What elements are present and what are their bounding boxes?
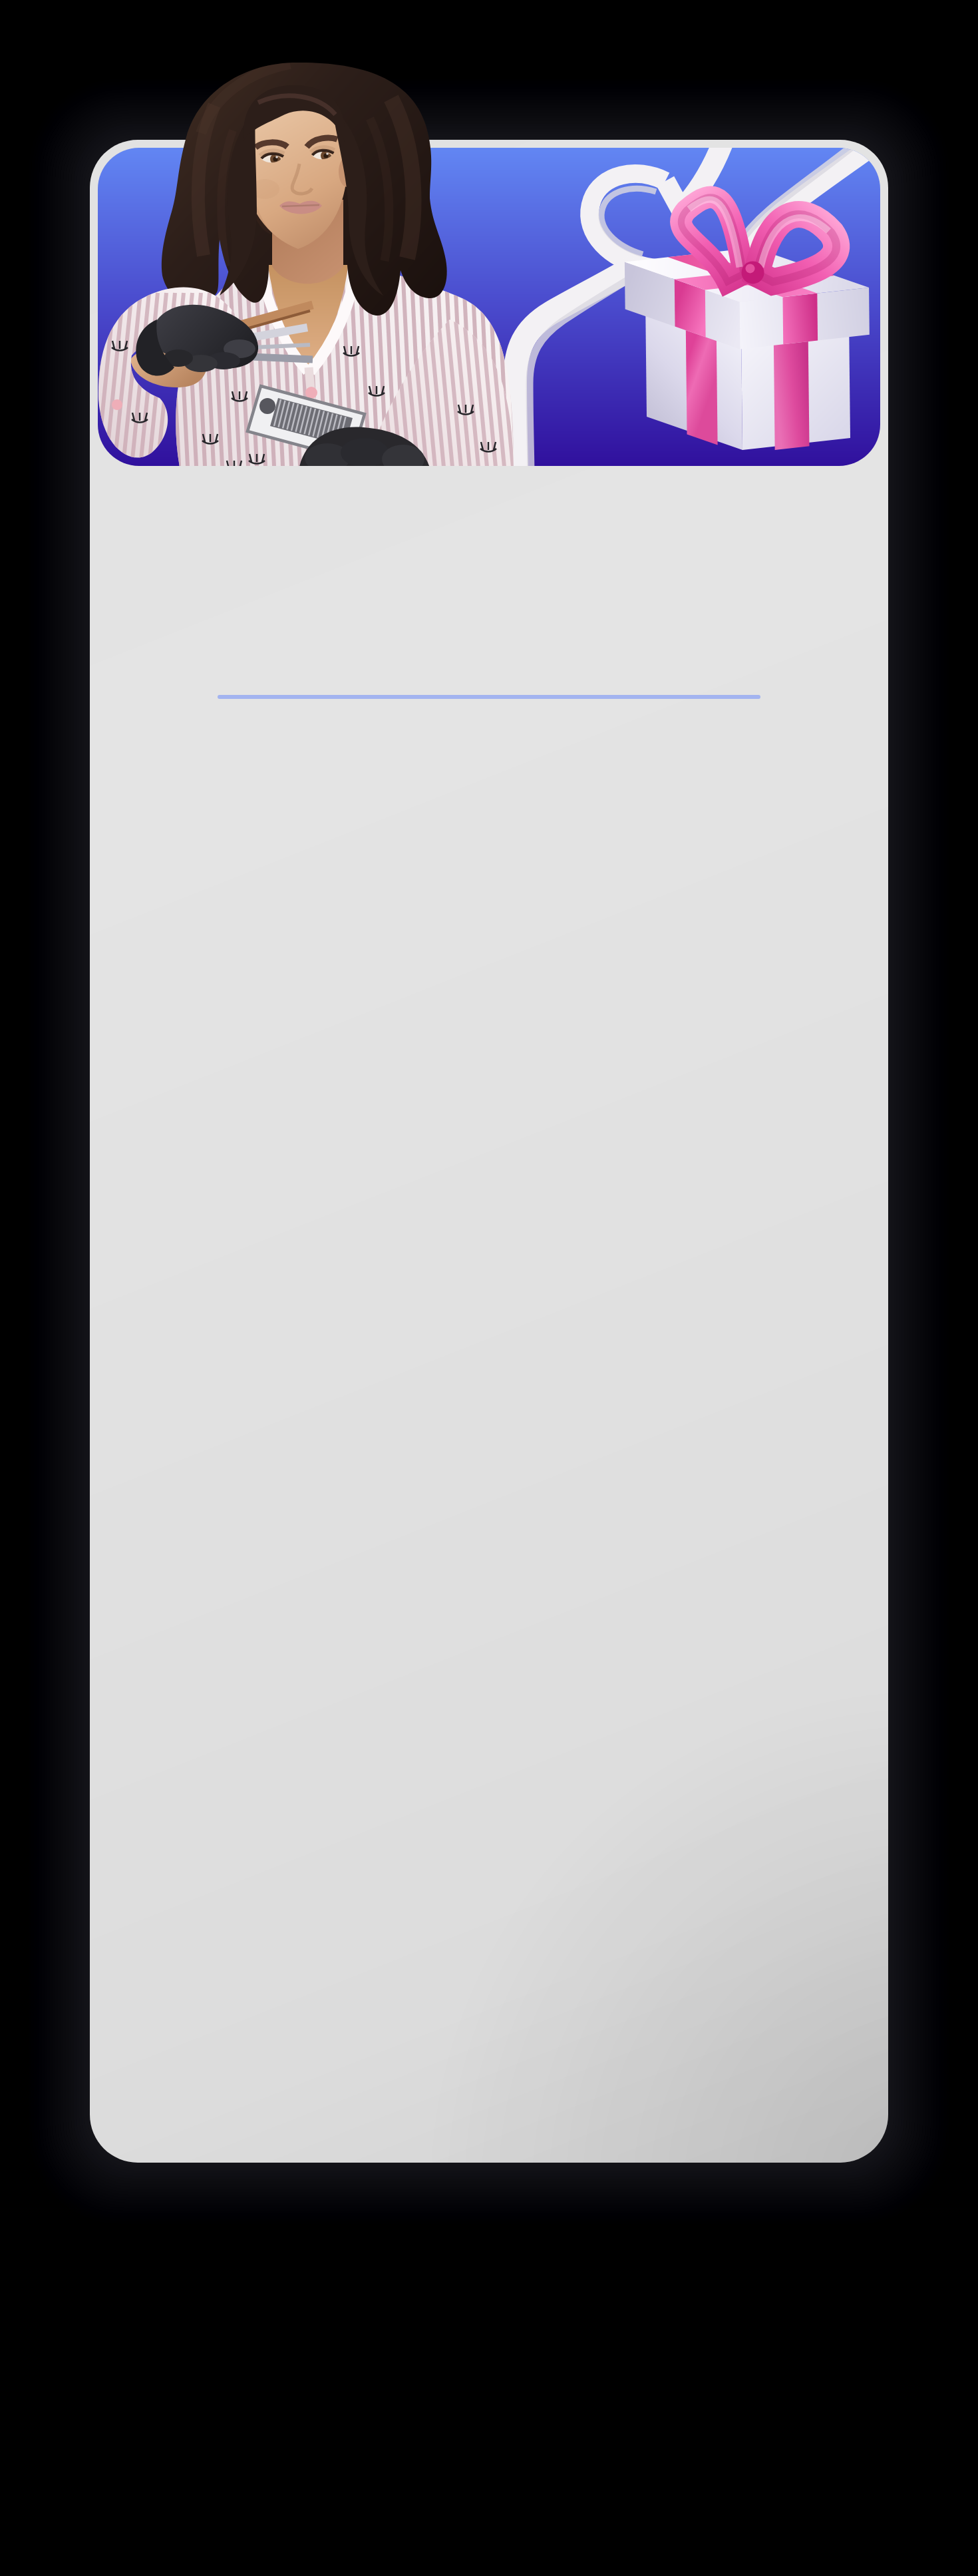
button[interactable]: Gift promotion banner xyxy=(98,148,880,466)
